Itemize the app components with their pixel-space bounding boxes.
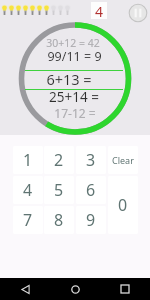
staticText: 99/11 = 9 (47, 48, 102, 65)
button[interactable]: 1 (13, 146, 43, 174)
staticText: 1 (23, 149, 33, 171)
button[interactable]: Home (64, 278, 86, 300)
button[interactable]: Clear (108, 146, 138, 174)
button[interactable]: 4 (91, 2, 107, 19)
staticText: 0 (118, 194, 128, 216)
button[interactable]: Pause (128, 3, 148, 23)
staticText: 17-12 = (54, 105, 96, 121)
staticText: 4 (23, 179, 33, 201)
button[interactable]: 3 (76, 146, 106, 174)
staticText: 7 (23, 209, 33, 231)
button[interactable]: 4 (13, 176, 43, 204)
staticText: 2 (54, 149, 64, 171)
staticText: 4 (95, 2, 104, 19)
button[interactable]: Recents (114, 278, 136, 300)
staticText: Clear (112, 154, 134, 166)
staticText: 30+12 = 42 (46, 36, 100, 50)
button[interactable]: 8 (44, 206, 74, 234)
button[interactable]: 2 (44, 146, 74, 174)
button[interactable]: 9 (76, 206, 106, 234)
button[interactable]: 5 (44, 176, 74, 204)
staticText: 8 (54, 209, 64, 231)
button[interactable]: 0 (108, 176, 138, 234)
button[interactable]: 6 (76, 176, 106, 204)
staticText: 5 (54, 179, 64, 201)
button[interactable]: 7 (13, 206, 43, 234)
staticText: 6 (86, 179, 96, 201)
staticText: 6+13 = (46, 69, 92, 89)
button[interactable]: Back (14, 278, 36, 300)
staticText: 9 (86, 209, 96, 231)
staticText: 25+14 = (49, 88, 99, 106)
staticText: 3 (86, 149, 96, 171)
